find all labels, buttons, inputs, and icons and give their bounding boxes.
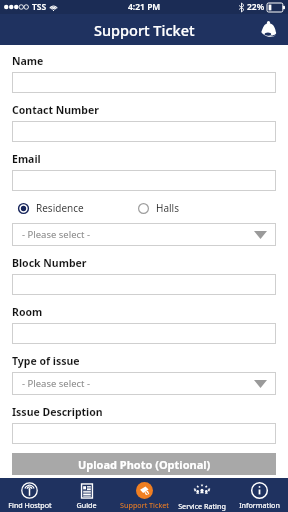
staticText: Support Ticket — [120, 500, 169, 510]
staticText: Halls — [156, 201, 179, 215]
button[interactable]: Notifications — [256, 18, 280, 42]
staticText: Residence — [36, 201, 84, 215]
button[interactable]: Guide — [58, 478, 115, 512]
button[interactable] — [12, 323, 276, 344]
button[interactable]: Residence — [18, 201, 84, 215]
staticText: Type of issue — [12, 354, 80, 368]
staticText: Guide — [76, 500, 97, 510]
staticText: Information — [239, 500, 280, 510]
staticText: TSS — [32, 1, 47, 13]
staticText: Name — [12, 54, 44, 68]
staticText: Upload Photo (Optional) — [78, 457, 211, 472]
button[interactable]: Support Ticket — [116, 478, 173, 512]
button[interactable] — [12, 121, 276, 142]
button[interactable]: Upload Photo (Optional) — [12, 453, 276, 475]
button[interactable] — [12, 423, 276, 444]
staticText: Block Number — [12, 256, 87, 270]
button[interactable]: Information — [231, 478, 288, 512]
button[interactable]: Service Rating — [173, 478, 230, 512]
staticText: Find Hostpot — [8, 500, 52, 510]
staticText: Issue Description — [12, 405, 103, 419]
staticText: Room — [12, 305, 43, 319]
button[interactable]: Halls — [138, 201, 179, 215]
staticText: - Please select - — [22, 228, 91, 241]
button[interactable]: - Please select - — [12, 223, 276, 246]
staticText: Support Ticket — [94, 20, 195, 40]
button[interactable] — [12, 170, 276, 191]
staticText: 4:21 PM — [128, 1, 161, 13]
staticText: 22% — [247, 1, 265, 13]
staticText: Service Rating — [178, 501, 226, 511]
button[interactable] — [12, 274, 276, 295]
button[interactable]: Find Hostpot — [1, 478, 58, 512]
staticText: Contact Number — [12, 103, 99, 117]
staticText: - Please select - — [22, 377, 91, 390]
staticText: Email — [12, 152, 41, 166]
button[interactable]: - Please select - — [12, 372, 276, 395]
button[interactable] — [12, 72, 276, 93]
